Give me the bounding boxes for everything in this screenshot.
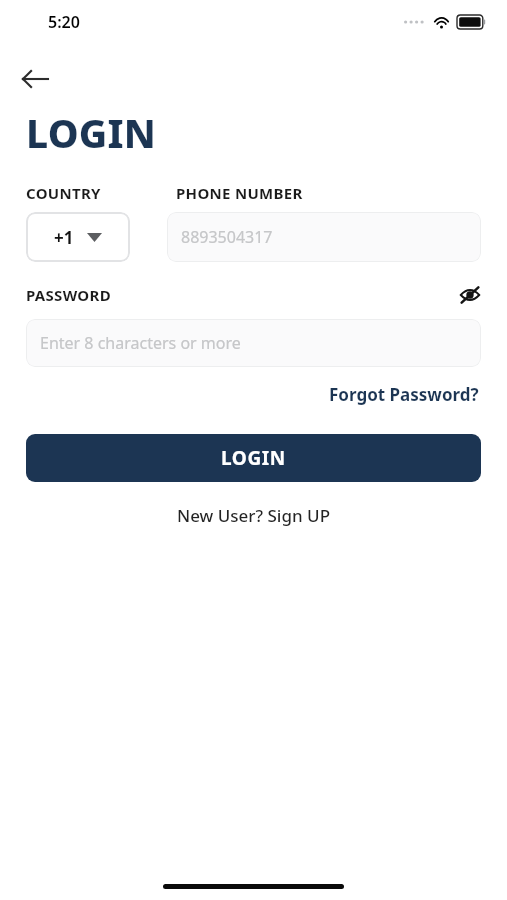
button[interactable]: Back xyxy=(14,58,56,100)
staticText: LOGIN xyxy=(26,106,157,159)
button[interactable]: Enter 8 characters or more xyxy=(26,319,481,367)
button[interactable]: Show password xyxy=(455,280,485,310)
staticText: LOGIN xyxy=(221,445,286,471)
staticText: PASSWORD xyxy=(26,285,111,305)
staticText: COUNTRY xyxy=(26,183,101,203)
staticText: 8893504317 xyxy=(181,226,273,248)
button[interactable]: Forgot Password? xyxy=(327,380,481,409)
staticText: Enter 8 characters or more xyxy=(40,332,241,354)
staticText: 5:20 xyxy=(48,11,80,33)
button[interactable]: +1 xyxy=(26,212,130,262)
staticText: PHONE NUMBER xyxy=(176,183,303,203)
staticText: +1 xyxy=(54,226,74,249)
staticText: Forgot Password? xyxy=(329,383,479,406)
button[interactable]: New User? Sign UP xyxy=(171,500,336,531)
button[interactable]: LOGIN xyxy=(26,434,481,482)
staticText: New User? Sign UP xyxy=(177,504,330,527)
button[interactable]: 8893504317 xyxy=(167,212,481,262)
